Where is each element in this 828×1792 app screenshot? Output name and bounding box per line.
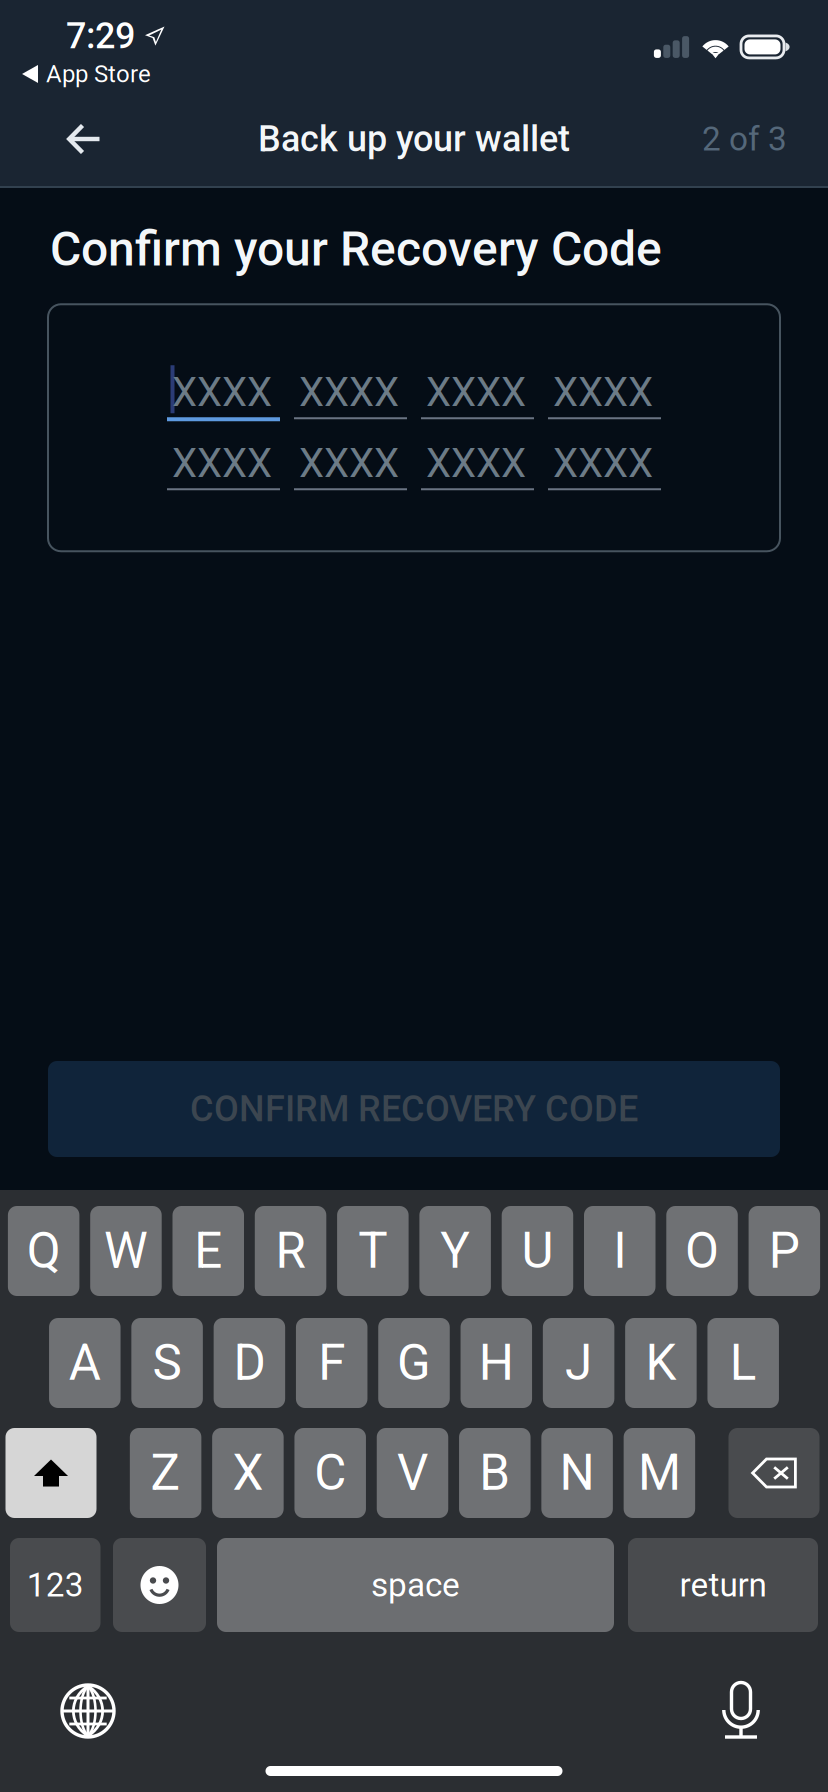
button[interactable]: G	[378, 1318, 450, 1408]
staticText: R	[275, 1222, 305, 1280]
button[interactable]: R	[255, 1206, 326, 1296]
staticText: C	[314, 1444, 346, 1502]
staticText: XXXX	[553, 440, 653, 487]
button[interactable]: Emoji	[113, 1538, 206, 1632]
staticText: A	[69, 1334, 101, 1392]
button[interactable]: B	[459, 1428, 531, 1518]
staticText: XXXX	[426, 440, 526, 487]
staticText: T	[358, 1222, 387, 1280]
staticText: O	[685, 1222, 719, 1280]
button[interactable]: Delete	[728, 1428, 819, 1518]
staticText: H	[479, 1334, 514, 1392]
button[interactable]: X	[212, 1428, 284, 1518]
staticText: XXXX	[553, 369, 653, 416]
button[interactable]: C	[294, 1428, 366, 1518]
button[interactable]: J	[543, 1318, 614, 1408]
button[interactable]: I	[584, 1206, 655, 1296]
button[interactable]: Back	[0, 91, 131, 187]
button[interactable]: Q	[8, 1206, 79, 1296]
staticText: I	[613, 1222, 626, 1280]
button[interactable]: Dictate	[684, 1679, 798, 1743]
staticText: P	[769, 1222, 800, 1280]
staticText: 7:29	[66, 15, 135, 57]
button[interactable]: E	[172, 1206, 244, 1296]
staticText: App Store	[46, 60, 151, 88]
button[interactable]: U	[502, 1206, 573, 1296]
button[interactable]: H	[461, 1318, 532, 1408]
button[interactable]: App Store	[0, 54, 165, 94]
staticText: U	[521, 1222, 553, 1280]
staticText: B	[479, 1444, 510, 1502]
button[interactable]: S	[131, 1318, 203, 1408]
staticText: Y	[440, 1222, 470, 1280]
staticText: XXXX	[299, 369, 399, 416]
staticText: XXXX	[426, 369, 526, 416]
staticText: J	[565, 1334, 592, 1392]
staticText: Q	[27, 1222, 61, 1280]
button[interactable]: space	[217, 1538, 614, 1632]
button[interactable]: P	[749, 1206, 820, 1296]
button[interactable]: W	[90, 1206, 162, 1296]
staticText: F	[318, 1334, 345, 1392]
staticText: K	[645, 1334, 676, 1392]
button[interactable]: F	[296, 1318, 367, 1408]
button[interactable]: Y	[419, 1206, 491, 1296]
staticText: Back up your wallet	[258, 118, 570, 160]
staticText: E	[194, 1222, 222, 1280]
staticText: D	[233, 1334, 265, 1392]
button[interactable]: Z	[130, 1428, 201, 1518]
staticText: XXXX	[172, 440, 272, 487]
staticText: G	[397, 1334, 431, 1392]
staticText: N	[560, 1444, 595, 1502]
staticText: M	[638, 1444, 681, 1502]
button[interactable]: O	[666, 1206, 738, 1296]
button[interactable]: CONFIRM RECOVERY CODE	[48, 1061, 780, 1157]
staticText: return	[679, 1565, 766, 1605]
button[interactable]: N	[541, 1428, 613, 1518]
staticText: W	[104, 1222, 148, 1280]
button[interactable]: 2 of 3	[678, 91, 828, 187]
button[interactable]: D	[214, 1318, 285, 1408]
button[interactable]: K	[625, 1318, 697, 1408]
button[interactable]: M	[624, 1428, 695, 1518]
staticText: CONFIRM RECOVERY CODE	[190, 1088, 638, 1130]
staticText: S	[153, 1334, 182, 1392]
button[interactable]: 123	[10, 1538, 100, 1632]
staticText: X	[232, 1444, 263, 1502]
staticText: Confirm your Recovery Code	[50, 221, 662, 277]
button[interactable]: T	[337, 1206, 409, 1296]
staticText: XXXX	[172, 369, 272, 416]
staticText: 2 of 3	[702, 119, 787, 159]
staticText: Z	[151, 1444, 181, 1502]
button[interactable]: V	[377, 1428, 448, 1518]
staticText: L	[730, 1334, 757, 1392]
button[interactable]: Shift	[5, 1428, 96, 1518]
staticText: 123	[27, 1565, 84, 1605]
button[interactable]: L	[707, 1318, 779, 1408]
button[interactable]: A	[49, 1318, 121, 1408]
button[interactable]: return	[628, 1538, 818, 1632]
staticText: V	[397, 1444, 428, 1502]
staticText: space	[371, 1565, 460, 1605]
button[interactable]: Change keyboard	[31, 1679, 145, 1743]
staticText: XXXX	[299, 440, 399, 487]
